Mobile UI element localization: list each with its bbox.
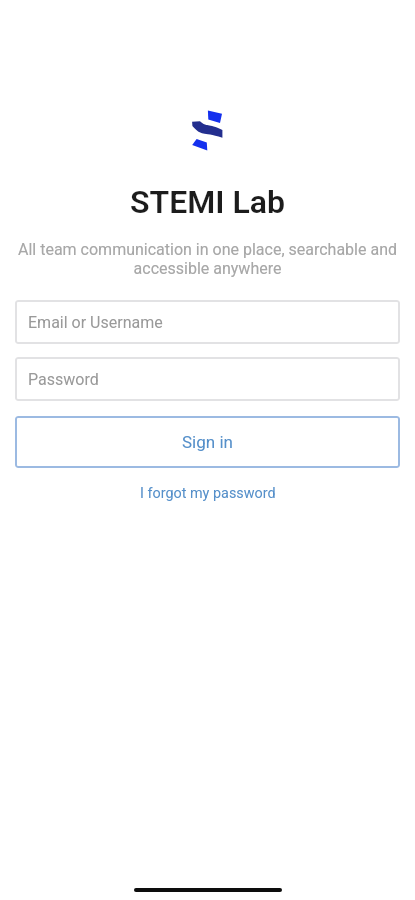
- button[interactable]: I forgot my password: [134, 482, 282, 505]
- staticText: STEMI Lab: [130, 183, 285, 221]
- button[interactable]: Sign in: [15, 416, 400, 468]
- button[interactable]: Password: [15, 357, 400, 401]
- staticText: Sign in: [182, 432, 233, 452]
- staticText: All team communication in one place, sea…: [12, 240, 403, 278]
- staticText: I forgot my password: [140, 485, 276, 502]
- staticText: Email or Username: [28, 313, 163, 332]
- staticText: Password: [28, 370, 99, 389]
- button[interactable]: Email or Username: [15, 300, 400, 344]
